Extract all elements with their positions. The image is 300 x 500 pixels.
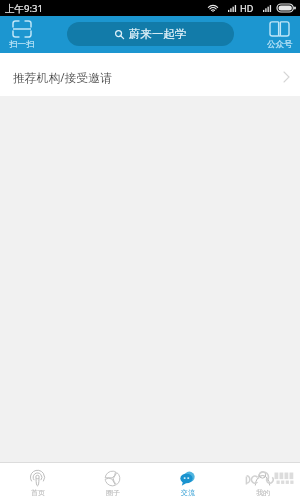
button[interactable]: 蔚来一起学 (67, 22, 234, 46)
staticText: 我的 (256, 488, 270, 497)
staticText: 推荐机构/接受邀请 (13, 69, 112, 85)
button[interactable]: 我的 (225, 467, 300, 497)
staticText: 上午9:31 (5, 2, 43, 15)
staticText: 公众号 (267, 39, 293, 50)
button[interactable]: 推荐机构/接受邀请 (0, 53, 300, 96)
button[interactable]: 圈子 (75, 467, 150, 497)
staticText: 蔚来一起学 (129, 27, 187, 41)
button[interactable]: 交流 (150, 467, 225, 497)
button[interactable]: 扫一扫 (0, 16, 43, 53)
staticText: 圈子 (106, 488, 120, 497)
staticText: 扫一扫 (9, 39, 35, 50)
staticText: HD (240, 2, 254, 14)
staticText: 首页 (31, 488, 45, 497)
button[interactable]: 首页 (0, 467, 75, 497)
button[interactable]: 公众号 (259, 16, 300, 53)
staticText: 交流 (181, 488, 195, 497)
